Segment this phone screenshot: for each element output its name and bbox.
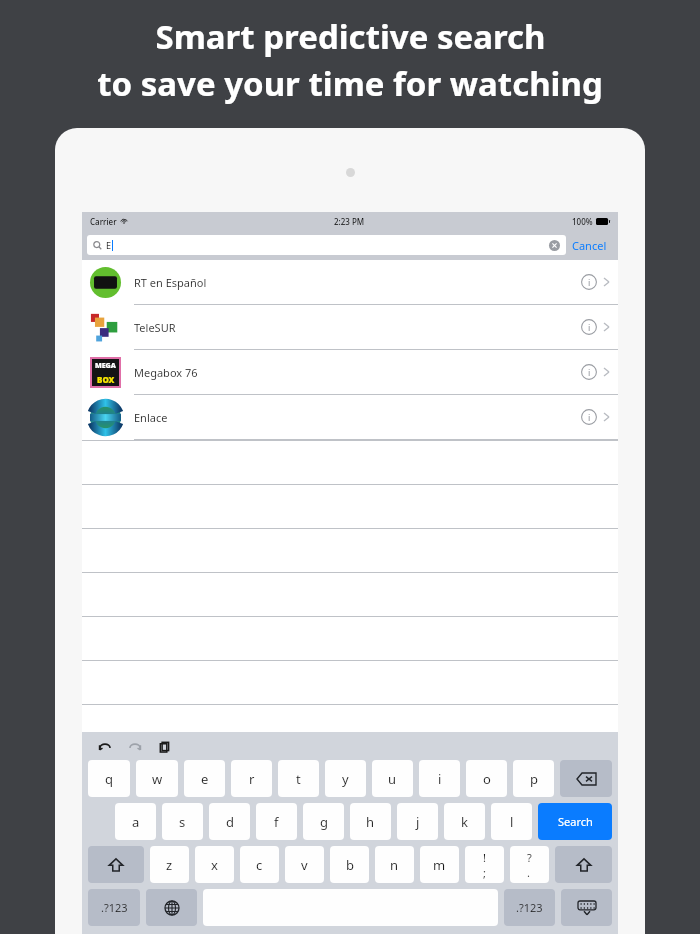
staticText: p [530, 770, 538, 788]
button[interactable]: n [375, 846, 414, 883]
staticText: v [301, 856, 308, 874]
button[interactable]: Shift [88, 846, 144, 883]
button[interactable]: e [184, 760, 225, 797]
button[interactable]: s [162, 803, 203, 840]
button[interactable]: TeleSUR [82, 305, 618, 350]
button[interactable]: Search [538, 803, 612, 840]
staticText: c [256, 856, 263, 874]
button[interactable]: E [87, 235, 566, 255]
button[interactable]: Language [146, 889, 197, 926]
button[interactable]: q [88, 760, 130, 797]
staticText: Search [558, 814, 593, 829]
staticText: ? . [527, 850, 532, 880]
button[interactable]: .?123 [88, 889, 140, 926]
staticText: m [433, 856, 446, 874]
staticText: y [342, 770, 349, 788]
staticText: ! ; [483, 850, 486, 880]
button[interactable]: Info [581, 274, 597, 290]
button[interactable]: g [303, 803, 344, 840]
staticText: l [510, 813, 514, 831]
staticText: q [105, 770, 113, 788]
staticText: 2:23 PM [334, 216, 365, 227]
button[interactable]: x [195, 846, 234, 883]
button[interactable]: Undo [96, 738, 114, 756]
staticText: i [588, 276, 591, 288]
button[interactable]: RT en Español [82, 260, 618, 305]
staticText: b [346, 856, 354, 874]
button[interactable]: u [372, 760, 413, 797]
staticText: to save your time for watching [97, 61, 603, 106]
button[interactable]: i [419, 760, 460, 797]
staticText: E [106, 239, 112, 251]
staticText: .?123 [516, 900, 543, 915]
button[interactable]: Clear [549, 240, 560, 251]
staticText: i [438, 770, 442, 788]
staticText: RT en Español [134, 275, 207, 290]
button[interactable]: z [150, 846, 189, 883]
staticText: i [588, 366, 591, 378]
button[interactable]: MEGA [82, 350, 618, 395]
button[interactable]: Backspace [560, 760, 612, 797]
button[interactable]: Shift [555, 846, 612, 883]
staticText: g [320, 813, 328, 831]
button[interactable]: ! ; [465, 846, 504, 883]
staticText: x [211, 856, 218, 874]
button[interactable]: Paste [156, 738, 174, 756]
button[interactable]: Cancel [572, 238, 607, 253]
staticText: t [296, 770, 301, 788]
staticText: BOX [97, 374, 115, 385]
staticText: i [588, 321, 591, 333]
button[interactable]: Info [581, 319, 597, 335]
button[interactable]: v [285, 846, 324, 883]
button[interactable]: .?123 [504, 889, 555, 926]
staticText: Carrier [90, 216, 117, 227]
staticText: TeleSUR [134, 320, 176, 335]
staticText: r [249, 770, 255, 788]
button[interactable]: w [136, 760, 178, 797]
button[interactable]: Enlace [82, 395, 618, 440]
staticText: i [588, 411, 591, 423]
button[interactable]: k [444, 803, 485, 840]
staticText: f [274, 813, 279, 831]
staticText: d [226, 813, 234, 831]
button[interactable]: c [240, 846, 279, 883]
button[interactable]: r [231, 760, 272, 797]
button[interactable]: p [513, 760, 554, 797]
button[interactable]: d [209, 803, 250, 840]
button[interactable]: m [420, 846, 459, 883]
button[interactable]: o [466, 760, 507, 797]
button[interactable]: j [397, 803, 438, 840]
staticText: j [416, 813, 420, 831]
staticText: 100% [572, 216, 593, 227]
staticText: z [166, 856, 173, 874]
button[interactable]: Hide keyboard [561, 889, 612, 926]
staticText: a [132, 813, 140, 831]
staticText: w [152, 770, 163, 788]
button[interactable]: ? . [510, 846, 549, 883]
staticText: h [366, 813, 375, 831]
staticText: e [201, 770, 209, 788]
button[interactable]: f [256, 803, 297, 840]
button[interactable]: Info [581, 409, 597, 425]
button[interactable]: h [350, 803, 391, 840]
staticText: MEGA [95, 361, 116, 371]
button[interactable]: Redo [126, 738, 144, 756]
staticText: Cancel [572, 238, 607, 253]
staticText: s [179, 813, 186, 831]
button[interactable]: a [115, 803, 156, 840]
staticText: u [388, 770, 397, 788]
staticText: k [461, 813, 468, 831]
staticText: n [390, 856, 399, 874]
staticText: Enlace [134, 410, 168, 425]
staticText: Smart predictive search [155, 14, 546, 59]
button[interactable]: t [278, 760, 319, 797]
staticText: Megabox 76 [134, 365, 198, 380]
button[interactable]: y [325, 760, 366, 797]
staticText: .?123 [101, 900, 128, 915]
button[interactable]: Info [581, 364, 597, 380]
staticText: o [483, 770, 491, 788]
button[interactable]: b [330, 846, 369, 883]
button[interactable]: l [491, 803, 532, 840]
